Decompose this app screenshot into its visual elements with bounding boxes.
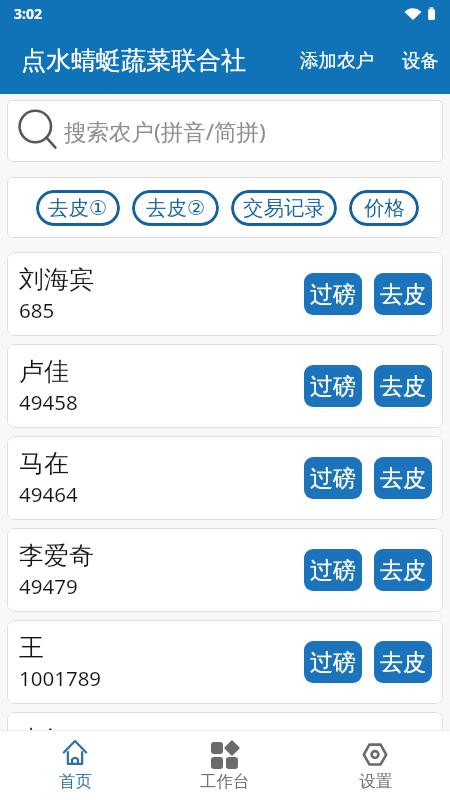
button[interactable]: 过磅 xyxy=(304,457,362,499)
staticText: 49458 xyxy=(19,388,78,416)
staticText: 点水蜻蜓蔬菜联合社 xyxy=(21,45,246,76)
button[interactable]: 过磅 xyxy=(304,365,362,407)
staticText: 去皮② xyxy=(146,195,206,221)
button[interactable]: 去皮 xyxy=(374,641,432,683)
staticText: 过磅 xyxy=(310,372,356,401)
staticText: 马在 xyxy=(19,448,69,479)
staticText: 3:02 xyxy=(14,4,42,23)
button[interactable]: 过磅 xyxy=(304,273,362,315)
staticText: 刘海宾 xyxy=(19,264,94,295)
button[interactable]: 卢佳 xyxy=(7,344,443,428)
button[interactable]: 设置 xyxy=(300,730,450,800)
button[interactable]: 工作台 xyxy=(150,730,300,800)
staticText: 49479 xyxy=(19,572,78,600)
staticText: 首页 xyxy=(59,771,92,792)
button[interactable]: 刘海宾 xyxy=(7,252,443,336)
button[interactable]: 设备 xyxy=(388,37,439,84)
staticText: 去皮 xyxy=(380,464,426,493)
staticText: 设置 xyxy=(359,771,392,792)
staticText: 过磅 xyxy=(310,464,356,493)
staticText: 设备 xyxy=(402,49,439,72)
button[interactable]: 过磅 xyxy=(304,549,362,591)
button[interactable]: 去皮 xyxy=(374,457,432,499)
staticText: 过磅 xyxy=(310,556,356,585)
staticText: 李红 xyxy=(19,724,69,730)
staticText: 1001789 xyxy=(19,664,102,692)
button[interactable]: 去皮 xyxy=(374,273,432,315)
staticText: 过磅 xyxy=(310,648,356,677)
staticText: 过磅 xyxy=(310,280,356,309)
button[interactable]: 李红 xyxy=(7,712,443,730)
staticText: 价格 xyxy=(364,195,405,221)
staticText: 卢佳 xyxy=(19,356,69,387)
button[interactable]: 去皮 xyxy=(374,365,432,407)
button[interactable]: 李爱奇 xyxy=(7,528,443,612)
staticText: 工作台 xyxy=(200,771,250,792)
staticText: 去皮 xyxy=(380,648,426,677)
staticText: 49464 xyxy=(19,480,78,508)
button[interactable]: 过磅 xyxy=(304,641,362,683)
staticText: 搜索农户(拼音/简拼) xyxy=(64,116,266,147)
button[interactable]: 价格 xyxy=(349,190,419,226)
button[interactable]: 首页 xyxy=(0,730,150,800)
button[interactable]: 搜索农户(拼音/简拼) xyxy=(7,100,443,162)
staticText: 添加农户 xyxy=(300,49,374,72)
staticText: 去皮① xyxy=(48,195,108,221)
button[interactable]: 添加农户 xyxy=(286,37,388,84)
staticText: 685 xyxy=(19,296,55,324)
button[interactable]: 王 xyxy=(7,620,443,704)
button[interactable]: 去皮① xyxy=(36,190,120,226)
staticText: 去皮 xyxy=(380,556,426,585)
button[interactable]: 交易记录 xyxy=(231,190,337,226)
staticText: 李爱奇 xyxy=(19,540,94,571)
staticText: 去皮 xyxy=(380,372,426,401)
staticText: 王 xyxy=(19,632,44,663)
staticText: 去皮 xyxy=(380,280,426,309)
button[interactable]: 马在 xyxy=(7,436,443,520)
staticText: 交易记录 xyxy=(243,195,325,221)
button[interactable]: 去皮② xyxy=(132,190,219,226)
button[interactable]: 去皮 xyxy=(374,549,432,591)
